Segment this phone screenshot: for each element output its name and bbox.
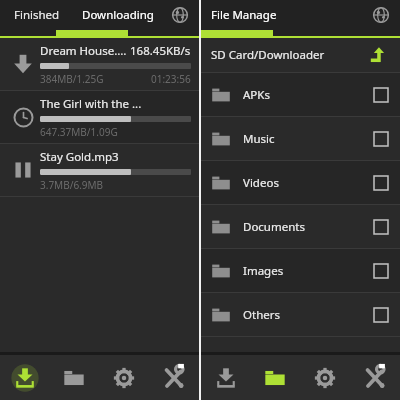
staticText: 01:23:56 [151,72,191,86]
staticText: File Manage [211,7,277,23]
staticText: 3.7MB/6.9MB [40,178,104,192]
button[interactable]: Stay Gold.mp3 [0,144,199,196]
staticText: 384MB/1.25G [40,72,104,86]
staticText: Others [243,307,280,323]
button[interactable]: Finished [8,3,66,27]
button[interactable]: Select Others [374,308,388,322]
staticText: Finished [14,7,60,23]
button[interactable]: Downloads [0,355,49,400]
button[interactable]: Videos [201,161,400,204]
staticText: SD Card/Downloader [211,47,325,63]
staticText: 647.37MB/1.09G [40,125,118,139]
button[interactable]: Files [49,355,99,400]
staticText: Downloading [82,7,154,23]
button[interactable]: SD Card/Downloader [201,38,400,72]
button[interactable]: Downloading [76,3,160,27]
button[interactable]: Documents [201,205,400,248]
button[interactable]: Others [201,293,400,336]
staticText: APKs [243,87,270,103]
button[interactable]: Files [250,355,300,400]
button[interactable]: Select Videos [374,176,388,190]
button[interactable]: Browser [368,2,394,28]
button[interactable]: Dream House.rmvb [0,38,199,90]
button[interactable]: Select Images [374,264,388,278]
staticText: Videos [243,175,279,191]
button[interactable]: The Girl with the ... [0,91,199,143]
button[interactable]: Select APKs [374,88,388,102]
button[interactable]: Settings [300,355,350,400]
button[interactable]: Tools [350,355,400,400]
staticText: Images [243,263,284,279]
staticText: 168.45KB/s [130,43,191,59]
staticText: Stay Gold.mp3 [40,149,119,165]
button[interactable]: Settings [99,355,149,400]
button[interactable]: Tools [149,355,199,400]
button[interactable]: File Manage [211,3,277,27]
staticText: Dream House.rmvb [40,43,130,59]
button[interactable]: Select Music [374,132,388,146]
button[interactable]: Music [201,117,400,160]
staticText: Documents [243,219,305,235]
button[interactable]: Browser [167,2,193,28]
other: Up one level [368,45,388,65]
button[interactable]: Images [201,249,400,292]
button[interactable]: APKs [201,73,400,116]
button[interactable]: Select Documents [374,220,388,234]
button[interactable]: Downloads [201,355,250,400]
staticText: The Girl with the ... [40,96,142,112]
staticText: Music [243,131,275,147]
